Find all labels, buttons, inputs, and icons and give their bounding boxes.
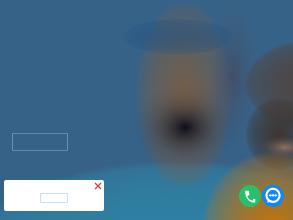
- button[interactable]: [40, 193, 68, 203]
- button[interactable]: Close: [94, 182, 102, 190]
- button[interactable]: Message: [262, 185, 284, 207]
- button[interactable]: [12, 133, 68, 151]
- button[interactable]: Call: [239, 185, 261, 207]
